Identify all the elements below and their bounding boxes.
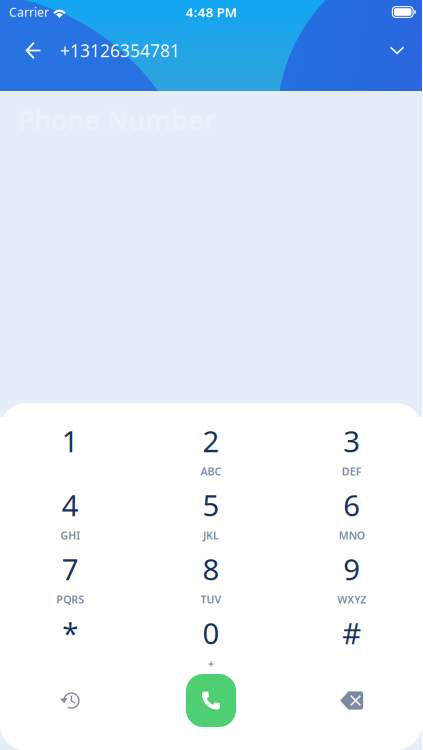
button[interactable]: 2 xyxy=(141,417,281,481)
staticText: 3 xyxy=(343,421,360,460)
button[interactable]: # xyxy=(281,609,422,673)
staticText: 6 xyxy=(343,485,360,524)
button[interactable]: 9 xyxy=(281,545,422,609)
staticText: GHI xyxy=(60,528,80,543)
staticText: 4:48 PM xyxy=(185,3,236,21)
staticText: TUV xyxy=(200,592,221,607)
staticText: * xyxy=(62,613,78,652)
button[interactable]: Call xyxy=(141,673,281,728)
button[interactable]: 3 xyxy=(281,417,422,481)
staticText: ABC xyxy=(200,464,221,479)
staticText: 1 xyxy=(62,421,79,460)
button[interactable]: 8 xyxy=(141,545,281,609)
staticText: 8 xyxy=(202,549,219,588)
staticText: 2 xyxy=(202,421,219,460)
staticText: 0 xyxy=(202,613,219,652)
staticText: 7 xyxy=(62,549,79,588)
staticText: WXYZ xyxy=(337,592,366,607)
staticText: 4 xyxy=(62,485,79,524)
button[interactable]: Back xyxy=(13,28,53,72)
button[interactable]: 6 xyxy=(281,481,422,545)
button[interactable]: Delete xyxy=(281,673,422,728)
staticText: MNO xyxy=(339,528,365,543)
button[interactable]: 4 xyxy=(0,481,141,545)
staticText: 9 xyxy=(343,549,360,588)
staticText: 5 xyxy=(202,485,219,524)
button[interactable]: 7 xyxy=(0,545,141,609)
button[interactable]: 0 xyxy=(141,609,281,673)
staticText: # xyxy=(342,613,361,652)
staticText: Carrier xyxy=(9,4,49,20)
staticText: + xyxy=(208,656,214,671)
staticText: PQRS xyxy=(56,592,84,607)
button[interactable]: Call history xyxy=(0,673,141,728)
staticText: JKL xyxy=(203,528,219,543)
button[interactable]: * xyxy=(0,609,141,673)
button[interactable]: 5 xyxy=(141,481,281,545)
staticText: +13126354781 xyxy=(60,39,180,62)
button[interactable]: Collapse keypad xyxy=(377,28,417,72)
button[interactable]: 1 xyxy=(0,417,141,481)
staticText: DEF xyxy=(342,464,362,479)
